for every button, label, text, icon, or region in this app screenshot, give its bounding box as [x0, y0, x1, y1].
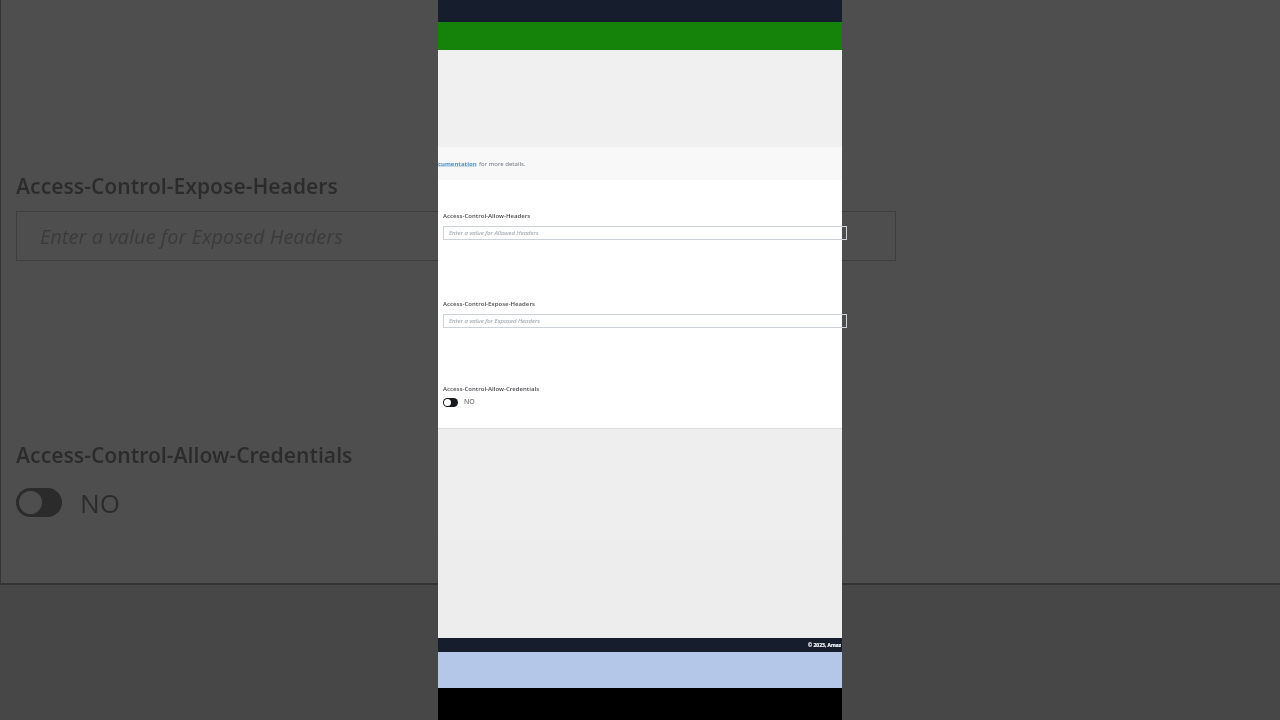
staticText: Access-Control-Allow-Credentials	[16, 441, 353, 470]
other: Allow credentials toggle, off	[443, 398, 458, 407]
staticText: cumentation	[438, 160, 477, 168]
button[interactable]: Enter a value for Allowed Headers	[443, 226, 847, 240]
staticText: NO	[464, 397, 475, 407]
staticText: NO	[80, 485, 121, 520]
staticText: Enter a value for Allowed Headers	[449, 229, 539, 237]
button[interactable]: Allow credentials toggle, off	[443, 397, 475, 407]
button[interactable]: Enter a value for Exposed Headers	[443, 314, 847, 328]
button[interactable]: cumentation	[438, 160, 526, 168]
staticText: Enter a value for Exposed Headers	[40, 223, 343, 250]
staticText: Access-Control-Allow-Credentials	[443, 385, 540, 393]
staticText: Access-Control-Allow-Headers	[443, 212, 531, 220]
staticText: Access-Control-Expose-Headers	[443, 300, 535, 308]
staticText: Access-Control-Expose-Headers	[16, 172, 338, 201]
staticText: © 2023, Amaz	[808, 642, 842, 649]
staticText: Enter a value for Exposed Headers	[449, 317, 540, 325]
staticText: for more details.	[479, 160, 526, 168]
